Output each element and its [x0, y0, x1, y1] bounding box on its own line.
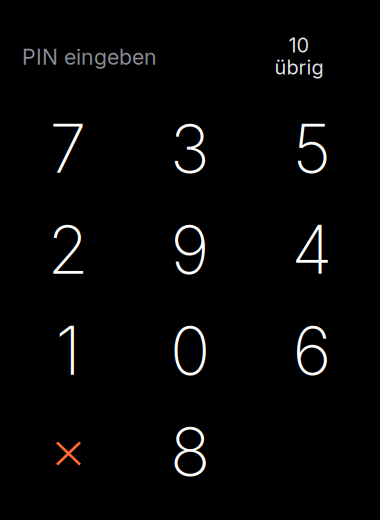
- button[interactable]: 4: [251, 199, 373, 300]
- button[interactable]: 8: [129, 401, 251, 502]
- button[interactable]: 6: [251, 300, 373, 401]
- button[interactable]: 5: [251, 98, 373, 199]
- button[interactable]: 0: [129, 300, 251, 401]
- staticText: 0: [170, 310, 210, 391]
- button[interactable]: Delete: [7, 401, 129, 502]
- staticText: 6: [292, 310, 331, 391]
- staticText: 1: [55, 310, 80, 391]
- staticText: 9: [170, 209, 209, 290]
- staticText: 3: [170, 108, 210, 189]
- button[interactable]: 2: [7, 199, 129, 300]
- staticText: 4: [291, 209, 332, 290]
- button[interactable]: 9: [129, 199, 251, 300]
- staticText: übrig: [274, 55, 323, 79]
- staticText: 8: [170, 411, 210, 492]
- staticText: 7: [49, 108, 86, 189]
- button[interactable]: 1: [7, 300, 129, 401]
- staticText: 5: [292, 108, 331, 189]
- staticText: PIN eingeben: [22, 44, 157, 70]
- staticText: 2: [47, 209, 88, 290]
- button[interactable]: 7: [7, 98, 129, 199]
- staticText: 10: [288, 33, 309, 57]
- button[interactable]: 3: [129, 98, 251, 199]
